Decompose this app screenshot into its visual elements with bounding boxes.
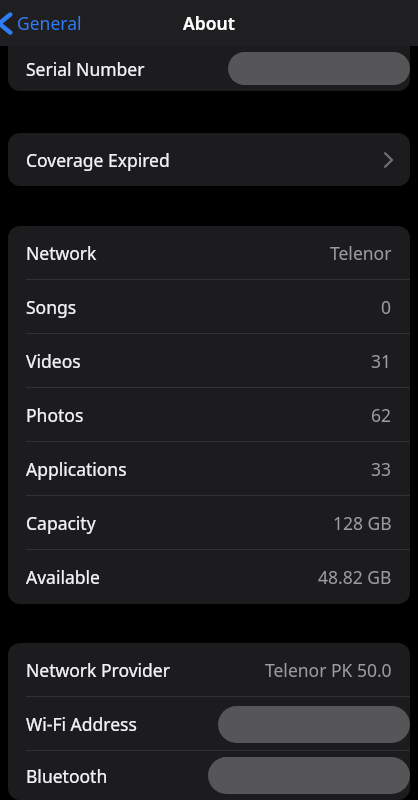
staticText: Wi-Fi Address: [26, 712, 137, 736]
staticText: Available: [26, 565, 100, 589]
button[interactable]: Back to General: [0, 6, 90, 40]
staticText: Songs: [26, 295, 77, 319]
staticText: About: [183, 11, 235, 35]
button[interactable]: Coverage Expired: [8, 133, 410, 186]
staticText: 48.82 GB: [318, 565, 392, 589]
staticText: Telenor PK 50.0: [265, 658, 392, 682]
staticText: 31: [371, 349, 392, 373]
staticText: 62: [371, 403, 392, 427]
staticText: General: [17, 11, 82, 35]
staticText: 33: [371, 457, 392, 481]
button[interactable]: Songs: [8, 280, 410, 334]
button[interactable]: Applications: [8, 442, 410, 496]
staticText: Bluetooth: [26, 764, 108, 788]
button[interactable]: Network Provider: [8, 643, 410, 697]
button[interactable]: Serial Number: [8, 46, 410, 91]
staticText: 0: [381, 295, 392, 319]
button[interactable]: Capacity: [8, 496, 410, 550]
button[interactable]: Available: [8, 550, 410, 604]
button[interactable]: Wi-Fi Address: [8, 697, 410, 751]
staticText: Telenor: [330, 241, 392, 265]
staticText: Videos: [26, 349, 81, 373]
button[interactable]: Network: [8, 226, 410, 280]
staticText: Serial Number: [26, 57, 145, 81]
staticText: Network: [26, 241, 97, 265]
staticText: Network Provider: [26, 658, 170, 682]
other: Open coverage details: [384, 152, 393, 168]
button[interactable]: Videos: [8, 334, 410, 388]
button[interactable]: Bluetooth: [8, 751, 410, 800]
staticText: Capacity: [26, 511, 96, 535]
staticText: Photos: [26, 403, 84, 427]
staticText: Applications: [26, 457, 127, 481]
staticText: 128 GB: [333, 511, 392, 535]
staticText: Coverage Expired: [26, 148, 170, 172]
button[interactable]: Photos: [8, 388, 410, 442]
